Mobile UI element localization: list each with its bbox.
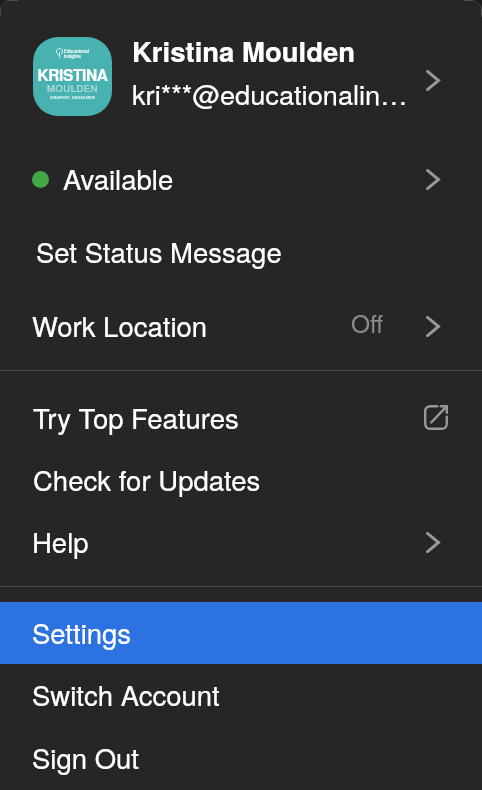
button[interactable]: Switch Account bbox=[0, 664, 482, 726]
other: Opens in a new window bbox=[424, 405, 448, 430]
staticText: Try Top Features bbox=[33, 397, 239, 436]
button[interactable]: Educational Insights bbox=[0, 0, 482, 148]
staticText: Set Status Message bbox=[36, 231, 282, 270]
staticText: MOULDEN bbox=[33, 81, 112, 95]
button[interactable]: Settings bbox=[0, 602, 482, 664]
staticText: kri***@educationalin… bbox=[132, 74, 408, 113]
button[interactable]: Try Top Features bbox=[0, 387, 482, 449]
button[interactable]: Sign Out bbox=[0, 726, 482, 790]
staticText: Switch Account bbox=[32, 674, 220, 713]
staticText: Work Location bbox=[32, 305, 208, 344]
button[interactable]: Check for Updates bbox=[0, 449, 482, 511]
staticText: Settings bbox=[32, 612, 132, 651]
staticText: Kristina Moulden bbox=[132, 31, 356, 70]
staticText: Help bbox=[32, 521, 89, 560]
staticText: GRAPHIC DESIGNER bbox=[33, 94, 112, 100]
button[interactable]: Set Status Message bbox=[0, 218, 482, 284]
button[interactable]: Work Location bbox=[0, 292, 482, 358]
staticText: Educational Insights bbox=[64, 48, 89, 59]
staticText: Sign Out bbox=[32, 737, 140, 776]
button[interactable]: Help bbox=[0, 511, 482, 573]
staticText: Available bbox=[63, 158, 174, 197]
staticText: KRISTINA bbox=[33, 64, 112, 86]
staticText: Off bbox=[351, 305, 384, 340]
button[interactable]: Available bbox=[0, 148, 482, 214]
staticText: Check for Updates bbox=[33, 459, 261, 498]
